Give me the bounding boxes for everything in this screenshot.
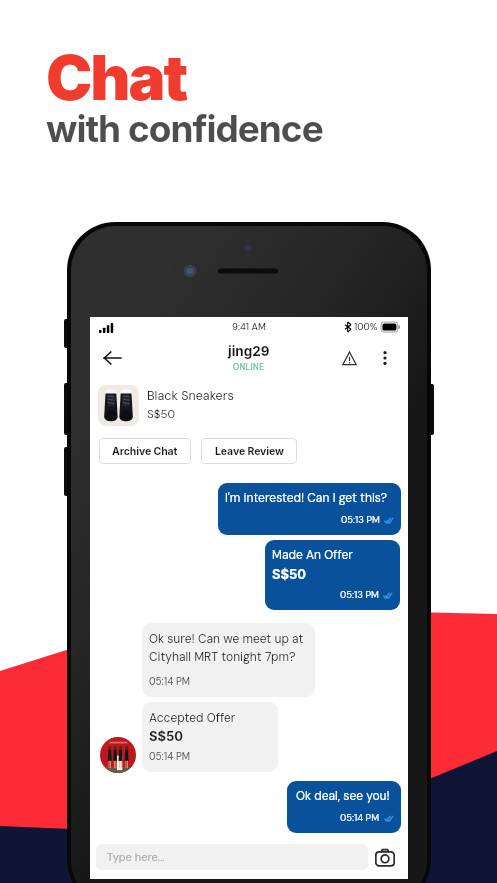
staticText: 05:14 PM xyxy=(340,812,380,824)
button[interactable]: More options xyxy=(372,345,398,371)
staticText: S$50 xyxy=(147,407,175,422)
staticText: 05:13 PM xyxy=(341,514,380,526)
staticText: Cityhall MRT tonight 7pm? xyxy=(149,649,296,665)
staticText: I'm interested! Can I get this? xyxy=(225,490,388,506)
staticText: with confidence xyxy=(46,106,323,151)
button[interactable]: I'm interested! Can I get this? xyxy=(218,483,401,535)
button[interactable]: Back xyxy=(96,342,128,374)
staticText: S$50 xyxy=(149,728,184,744)
staticText: Accepted Offer xyxy=(149,710,236,726)
staticText: 100% xyxy=(354,321,378,333)
button[interactable]: Type here... xyxy=(96,844,368,870)
button[interactable]: jing29 xyxy=(228,343,270,373)
staticText: ONLINE xyxy=(233,362,265,373)
staticText: Archive Chat xyxy=(112,445,178,458)
staticText: Leave Review xyxy=(215,445,284,458)
button[interactable]: Ok deal, see you! xyxy=(287,781,401,833)
button[interactable]: Accepted Offer xyxy=(142,702,278,772)
button[interactable]: Black Sneakers xyxy=(90,377,408,433)
button[interactable]: Profile picture xyxy=(100,737,136,773)
staticText: 05:13 PM xyxy=(340,589,379,601)
button[interactable]: Archive Chat xyxy=(99,438,191,464)
staticText: jing29 xyxy=(228,343,270,359)
staticText: Type here... xyxy=(107,850,165,864)
button[interactable]: Made An Offer xyxy=(265,540,400,610)
button[interactable]: Leave Review xyxy=(201,438,297,464)
button[interactable]: Ok sure! Can we meet up at xyxy=(142,623,315,697)
staticText: 05:14 PM xyxy=(149,675,191,688)
staticText: 9:41 AM xyxy=(232,321,266,333)
staticText: S$50 xyxy=(272,566,307,582)
staticText: Black Sneakers xyxy=(147,388,234,404)
button[interactable]: Camera xyxy=(372,843,398,871)
button[interactable]: Report xyxy=(336,345,362,371)
staticText: Chat xyxy=(46,40,187,115)
staticText: Made An Offer xyxy=(272,547,353,563)
staticText: 05:14 PM xyxy=(149,750,191,763)
staticText: Ok deal, see you! xyxy=(296,788,390,804)
staticText: Ok sure! Can we meet up at xyxy=(149,631,304,647)
